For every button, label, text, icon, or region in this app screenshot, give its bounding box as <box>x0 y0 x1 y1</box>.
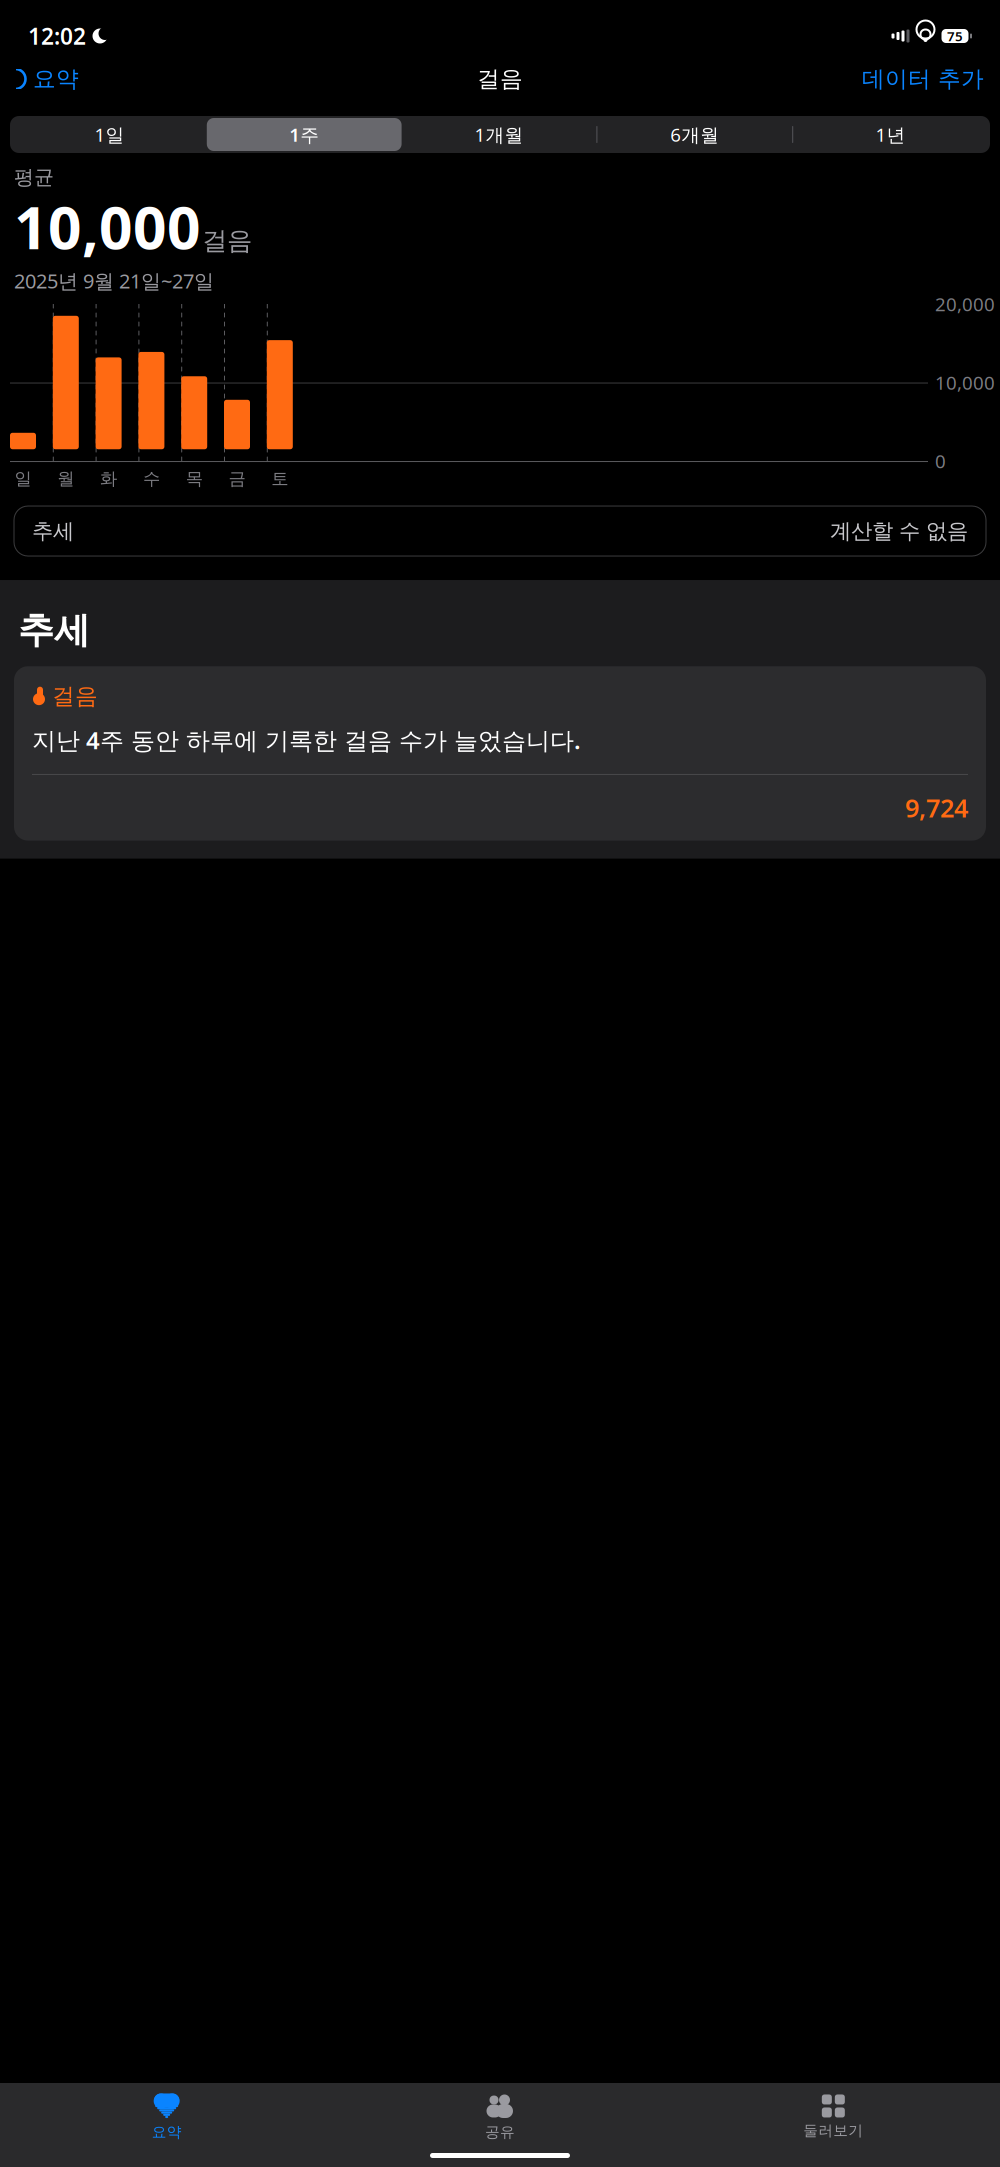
staticText: 걸음 <box>52 682 98 710</box>
staticText: 월 <box>57 468 74 489</box>
staticText: 추세 <box>18 608 90 652</box>
button[interactable]: 1주 <box>207 118 402 151</box>
staticText: 1년 <box>876 122 906 147</box>
staticText: 계산할 수 없음 <box>830 518 968 544</box>
staticText: 걸음 <box>477 65 523 93</box>
staticText: 요약 <box>152 2123 182 2141</box>
staticText: 평균 <box>14 165 54 190</box>
staticText: 목 <box>186 468 203 489</box>
staticText: 일 <box>14 468 31 489</box>
button[interactable]: 요약 <box>16 57 79 101</box>
button[interactable]: 1일 <box>12 118 207 151</box>
staticText: 걸음 <box>202 225 252 256</box>
button[interactable]: 걸음 <box>14 666 986 841</box>
button[interactable]: 6개월 <box>597 118 792 151</box>
staticText: 12:02 <box>28 21 86 51</box>
staticText: 금 <box>228 468 245 489</box>
staticText: 데이터 추가 <box>862 65 984 93</box>
button[interactable]: 요약 <box>0 2092 333 2142</box>
staticText: 1주 <box>289 122 319 147</box>
staticText: 10,000 <box>14 188 201 265</box>
staticText: 20,000 <box>935 292 995 316</box>
button[interactable]: 데이터 추가 <box>862 57 984 101</box>
staticText: 수 <box>143 468 160 489</box>
staticText: 1개월 <box>474 122 523 147</box>
staticText: 9,724 <box>905 791 968 825</box>
staticText: 공유 <box>485 2123 515 2141</box>
staticText: 10,000 <box>935 370 995 395</box>
staticText: 요약 <box>33 65 79 93</box>
staticText: 1일 <box>94 122 124 147</box>
staticText: 지난 4주 동안 하루에 기록한 걸음 수가 늘었습니다. <box>32 724 581 756</box>
staticText: 추세 <box>32 518 74 544</box>
button[interactable]: 둘러보기 <box>667 2092 1000 2142</box>
button[interactable]: 추세 <box>14 506 986 556</box>
button[interactable]: 공유 <box>333 2092 667 2142</box>
staticText: 둘러보기 <box>803 2121 863 2139</box>
staticText: 토 <box>271 468 288 489</box>
staticText: 2025년 9월 21일~27일 <box>14 267 214 294</box>
button[interactable]: 1년 <box>793 118 988 151</box>
staticText: 75 <box>947 27 963 45</box>
button[interactable]: 1개월 <box>402 118 596 151</box>
staticText: 0 <box>935 449 946 473</box>
staticText: 화 <box>100 468 117 489</box>
staticText: 6개월 <box>670 122 719 147</box>
